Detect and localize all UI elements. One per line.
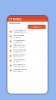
staticText: Week 12 · pending (13, 46, 25, 48)
button[interactable]: Overtime Form (7, 63, 48, 68)
button[interactable]: Leave Application (7, 29, 48, 34)
button[interactable]: Timesheet Entry (7, 44, 48, 48)
staticText: Overtime Form (13, 64, 24, 66)
button[interactable]: Feedback Survey (7, 68, 48, 73)
staticText: Awaiting approval (13, 51, 25, 53)
button[interactable]: Expense Claim (7, 34, 48, 39)
staticText: Timesheet Entry (13, 44, 26, 46)
staticText: Draft · 3 fields (13, 36, 21, 38)
staticText: Recent Forms (9, 23, 20, 24)
staticText: PF Forms (9, 17, 21, 21)
staticText: Travel Request (13, 39, 25, 41)
staticText: Expense Claim (13, 35, 23, 36)
staticText: New Form (33, 26, 40, 28)
staticText: Purchase Order (13, 49, 26, 51)
button[interactable]: Incident Report (7, 53, 48, 58)
button[interactable]: New Form (28, 25, 46, 29)
button[interactable]: Travel Request (7, 39, 48, 44)
staticText: Incident Report (13, 54, 25, 56)
staticText: Submitted Mar 4 (13, 41, 23, 43)
staticText: Draft · 1 field (13, 61, 20, 63)
staticText: Feedback Survey (13, 69, 27, 70)
staticText: Closed Feb 28 (13, 56, 23, 58)
staticText: Updated 2 days ago (13, 32, 27, 33)
button[interactable]: Purchase Order (7, 49, 48, 53)
staticText: Open until Apr 9 (13, 70, 23, 72)
staticText: Asset Request (13, 59, 25, 61)
staticText: Approved Mar 1 (13, 66, 25, 67)
button[interactable]: Asset Request (7, 58, 48, 63)
staticText: Leave Application (13, 30, 26, 32)
